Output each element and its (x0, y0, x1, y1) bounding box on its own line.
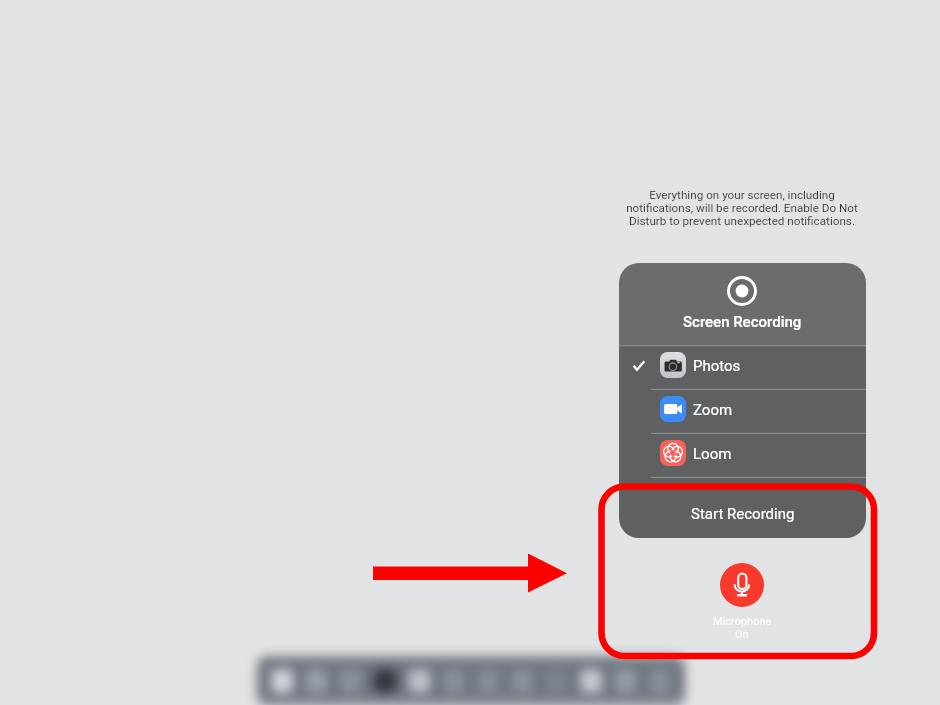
staticText: Start Recording (691, 505, 795, 523)
button[interactable]: Screen Recording (619, 263, 866, 345)
button[interactable]: Photos (619, 345, 866, 389)
button[interactable]: Zoom (619, 389, 866, 433)
staticText: Everything on your screen, including not… (616, 188, 868, 228)
button[interactable]: Microphone On (700, 563, 784, 645)
staticText: Microphone (713, 615, 772, 628)
staticText: On (735, 628, 749, 641)
staticText: Loom (693, 445, 732, 463)
staticText: Photos (693, 357, 741, 375)
staticText: Screen Recording (683, 313, 802, 331)
button[interactable]: Start Recording (619, 477, 866, 538)
staticText: Zoom (693, 401, 733, 419)
button[interactable]: Loom (619, 433, 866, 477)
